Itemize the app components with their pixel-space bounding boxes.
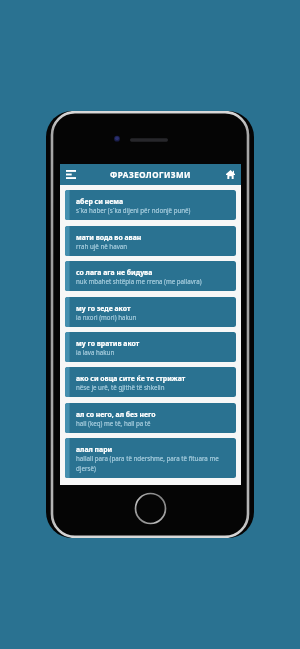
staticText: rrah ujë në havan [76, 242, 128, 250]
staticText: абер си нема [76, 197, 124, 206]
staticText: алал пари [76, 445, 113, 454]
button[interactable]: алал пари [65, 438, 236, 478]
staticText: му го зеде акот [76, 304, 131, 313]
button[interactable]: ал со него, ал без него [65, 403, 236, 433]
button[interactable]: Home button [134, 492, 167, 525]
staticText: s`ka haber (s`ka dijeni për ndonjë punë) [76, 206, 191, 214]
button[interactable]: му го зеде акот [65, 297, 236, 327]
button[interactable]: му го вратив акот [65, 332, 236, 362]
staticText: му го вратив акот [76, 339, 140, 348]
staticText: hallall para (para të ndershme, para të … [76, 454, 231, 472]
button[interactable]: ако си овца сите ќе те стрижат [65, 367, 236, 397]
button[interactable]: со лага ага не бидува [65, 261, 236, 291]
staticText: hall (keq) me të, hall pa të [76, 419, 151, 427]
button[interactable]: мати вода во аван [65, 226, 236, 256]
staticText: ФРАЗЕОЛОГИЗМИ [110, 169, 191, 180]
staticText: со лага ага не бидува [76, 268, 153, 277]
staticText: мати вода во аван [76, 233, 142, 242]
staticText: nuk mbahet shtëpia me rrena (me pallavra… [76, 277, 202, 285]
staticText: ал со него, ал без него [76, 410, 156, 419]
button[interactable]: Menu [60, 164, 82, 185]
staticText: ia nxori (mori) hakun [76, 313, 137, 321]
staticText: ако си овца сите ќе те стрижат [76, 374, 186, 383]
staticText: nëse je urë, të gjithë të shkelin [76, 383, 165, 391]
button[interactable]: Home [219, 164, 241, 185]
button[interactable]: абер си нема [65, 190, 236, 220]
staticText: ia lava hakun [76, 348, 115, 356]
